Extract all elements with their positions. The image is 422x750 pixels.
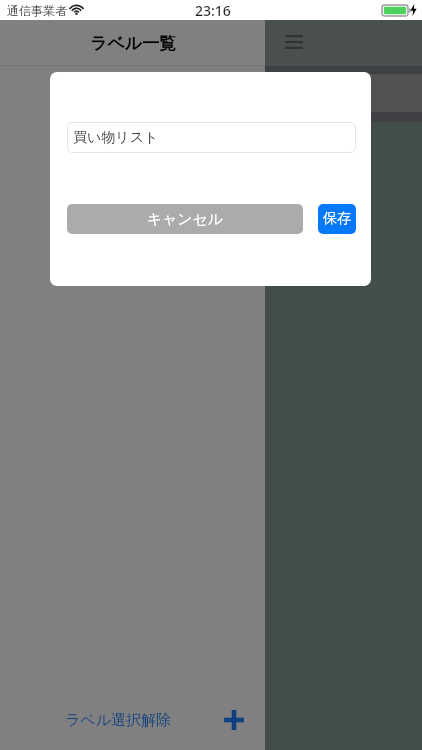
other: Battery charging <box>382 5 408 16</box>
staticText: 23:16 <box>195 1 231 20</box>
staticText: キャンセル <box>147 210 223 229</box>
button[interactable]: キャンセル <box>67 204 303 234</box>
staticText: 保存 <box>323 210 351 228</box>
button[interactable]: Menu <box>276 24 312 60</box>
staticText: ラベル一覧 <box>90 33 177 54</box>
staticText: 買い物リスト <box>73 129 159 147</box>
staticText: 通信事業者 <box>7 3 67 18</box>
button[interactable]: Add label <box>217 703 251 737</box>
other: Wi-Fi <box>70 5 83 15</box>
button[interactable]: 保存 <box>318 204 356 234</box>
button[interactable] <box>265 74 422 112</box>
button[interactable]: ラベル選択解除 <box>65 711 172 730</box>
staticText: ラベル選択解除 <box>65 711 172 730</box>
button[interactable]: 買い物リスト <box>67 122 356 153</box>
